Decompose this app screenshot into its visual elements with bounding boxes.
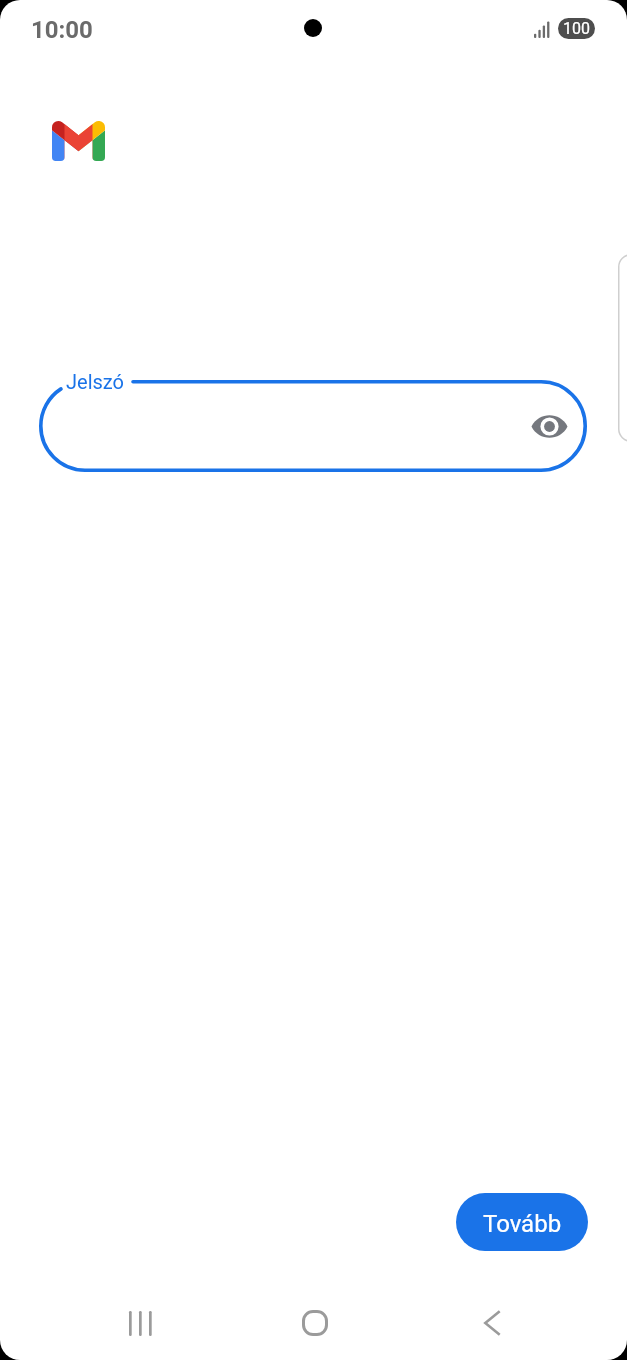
button[interactable]: Legutóbbiak [106,1289,174,1357]
button[interactable]: Tovább [456,1193,588,1251]
staticText: Jelszó [66,370,124,393]
staticText: 100 [563,19,590,38]
staticText: Tovább [483,1210,562,1238]
button[interactable]: Jelszó megjelenítése [527,404,572,448]
button[interactable]: Vissza [458,1289,526,1357]
button[interactable]: Kezdőképernyő [281,1289,349,1357]
staticText: 10:00 [31,16,93,44]
